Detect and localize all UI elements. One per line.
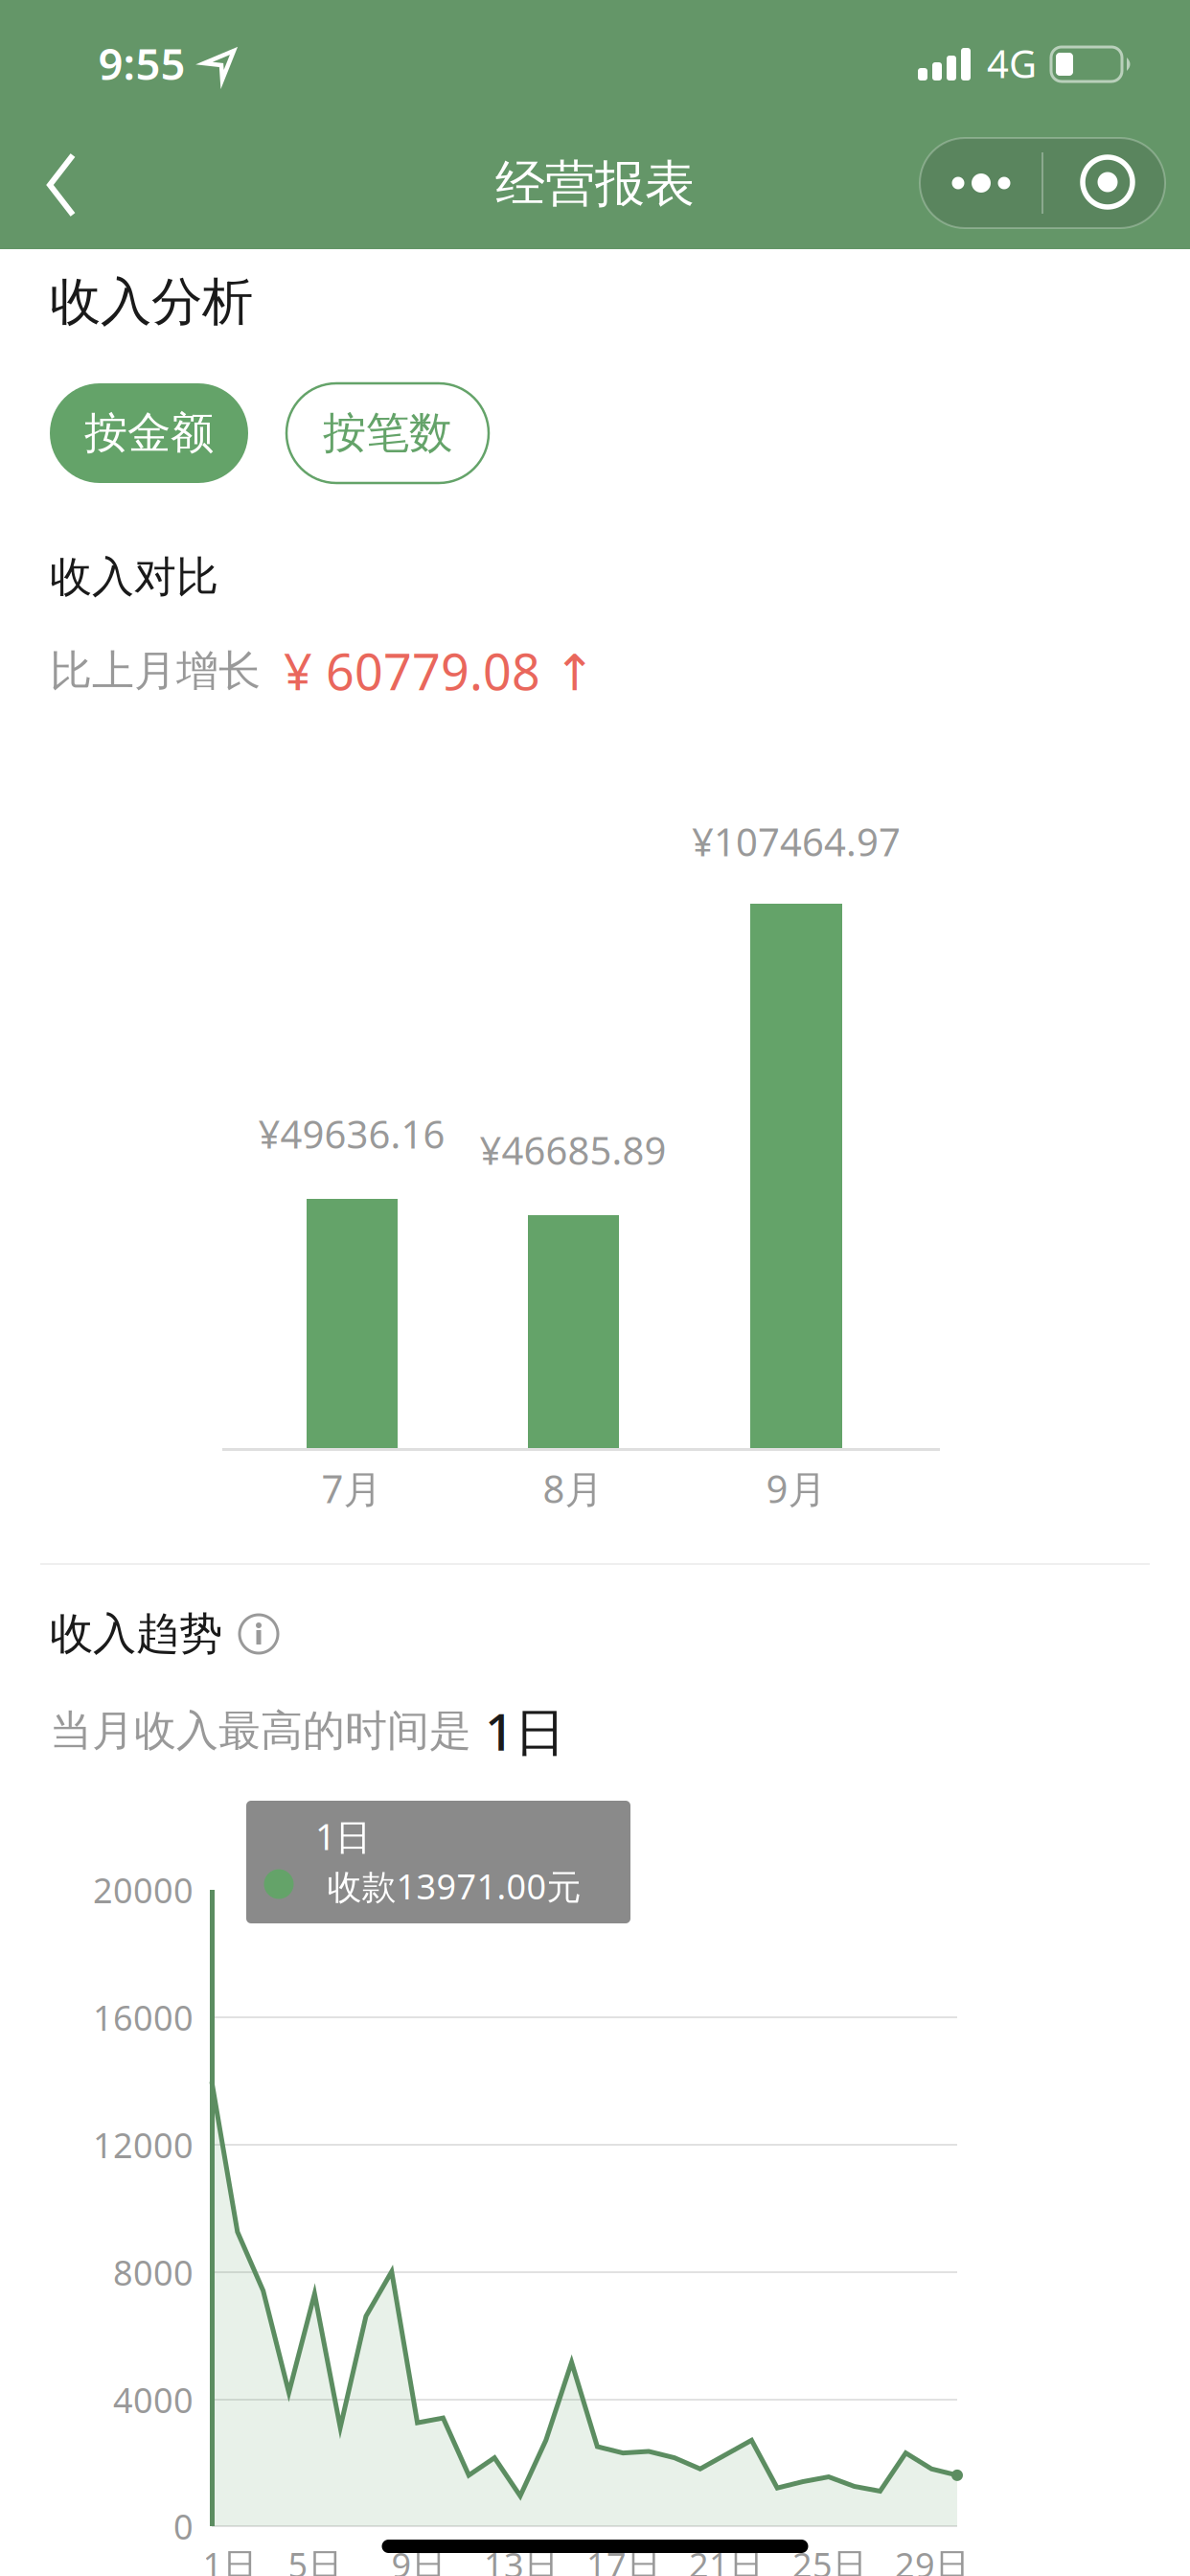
- staticText: 8月: [543, 1463, 603, 1514]
- staticText: ¥107464.97: [692, 816, 901, 867]
- staticText: 经营报表: [495, 153, 695, 215]
- staticText: 7月: [321, 1463, 382, 1514]
- staticText: 25日: [792, 2542, 867, 2576]
- button[interactable]: 按笔数: [286, 383, 489, 483]
- staticText: 17日: [586, 2542, 661, 2576]
- staticText: 按笔数: [323, 407, 452, 460]
- staticText: 21日: [689, 2542, 764, 2576]
- staticText: 比上月增长: [50, 645, 261, 697]
- staticText: 1日: [315, 1812, 371, 1860]
- staticText: 收入分析: [50, 270, 253, 333]
- staticText: 1日: [485, 1697, 565, 1765]
- staticText: 收入趋势: [50, 1607, 222, 1661]
- staticText: 16000: [93, 1994, 194, 2040]
- staticText: 5日: [288, 2542, 343, 2576]
- staticText: ¥ 60779.08 ↑: [284, 638, 596, 704]
- staticText: 29日: [895, 2542, 970, 2576]
- staticText: 9月: [766, 1463, 826, 1514]
- staticText: ¥46685.89: [480, 1125, 666, 1175]
- staticText: 收入对比: [50, 551, 218, 603]
- button[interactable]: Back: [48, 151, 80, 218]
- staticText: 0: [173, 2503, 194, 2549]
- button[interactable]: More: [920, 138, 1042, 228]
- staticText: 4000: [113, 2377, 194, 2423]
- button[interactable]: Close: [1042, 138, 1165, 228]
- staticText: 9日: [391, 2542, 446, 2576]
- staticText: 4G: [987, 38, 1037, 89]
- staticText: 8000: [113, 2249, 194, 2295]
- staticText: 当月收入最高的时间是: [50, 1705, 471, 1757]
- button[interactable]: 按金额: [50, 383, 248, 483]
- staticText: 13日: [484, 2542, 559, 2576]
- staticText: 收款13971.00元: [327, 1863, 581, 1909]
- staticText: 12000: [93, 2122, 194, 2168]
- staticText: 1日: [203, 2542, 257, 2576]
- staticText: 9:55: [98, 34, 185, 92]
- button[interactable]: Info: [238, 1613, 280, 1655]
- staticText: 20000: [93, 1867, 194, 1913]
- staticText: ¥49636.16: [258, 1108, 445, 1159]
- staticText: 按金额: [84, 407, 214, 460]
